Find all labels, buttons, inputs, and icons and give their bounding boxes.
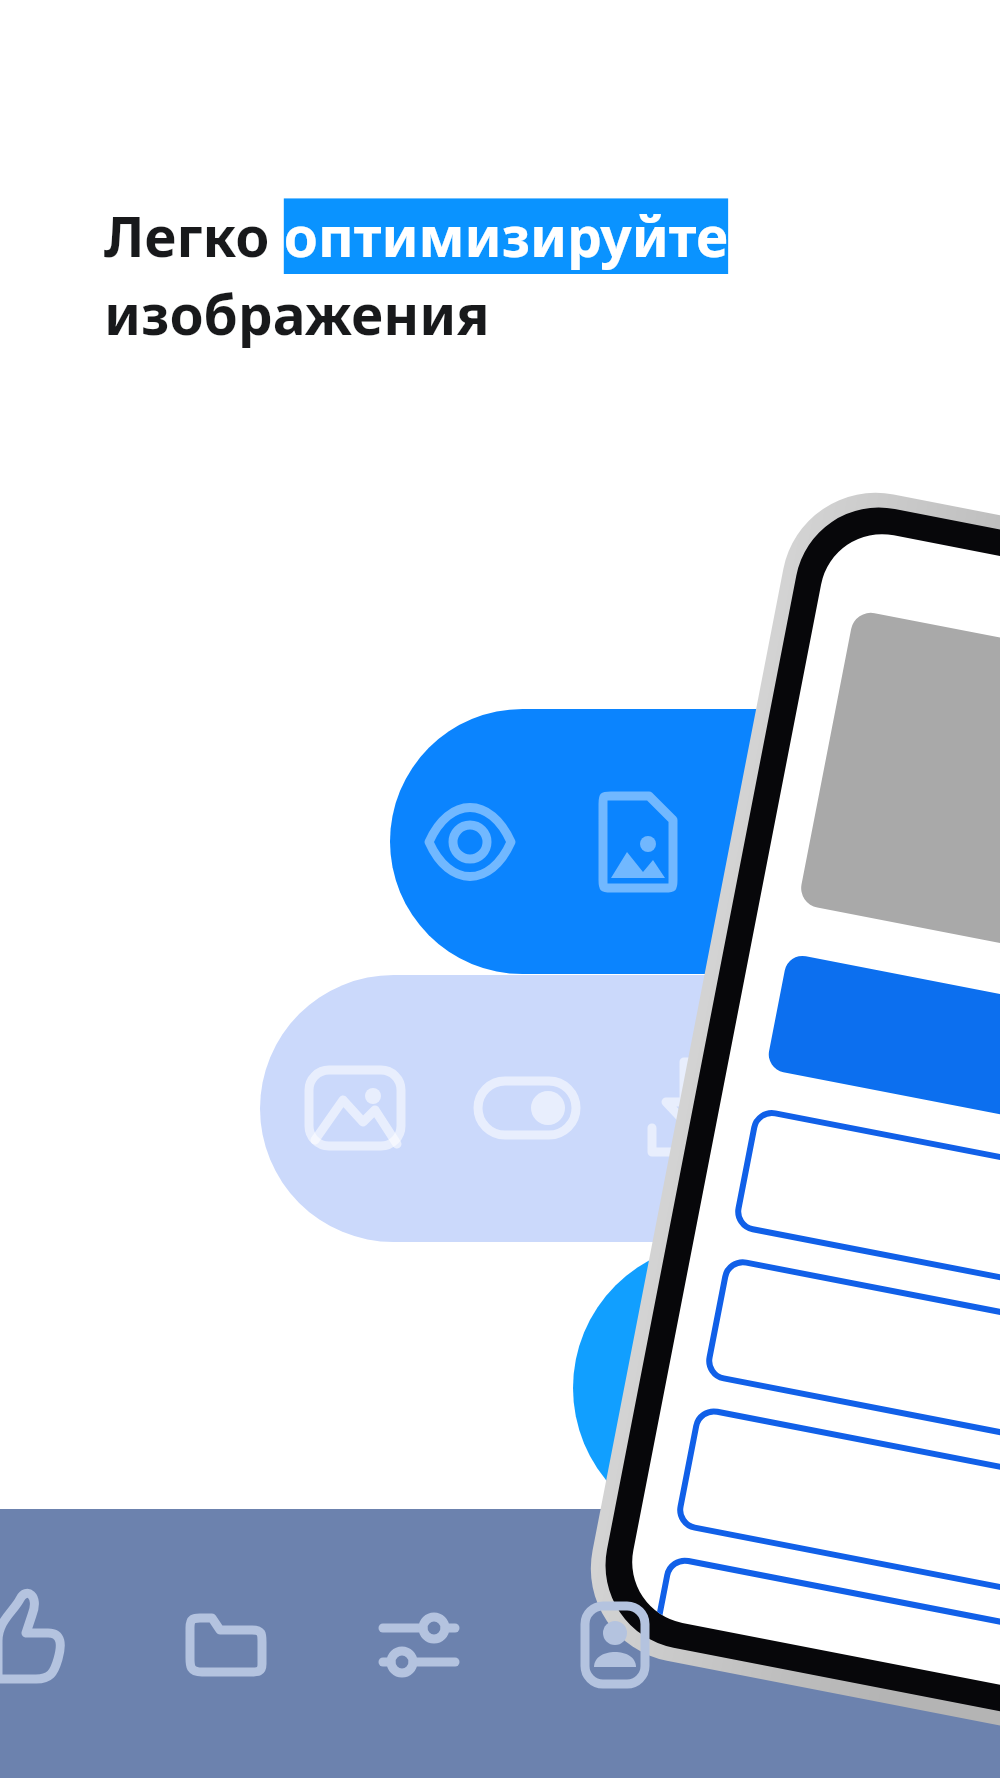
button[interactable]: Profile (549, 1579, 681, 1711)
staticText: Легко оптимизируйте изображения (104, 198, 729, 351)
button[interactable]: Tools (0, 1579, 94, 1711)
button[interactable]: Folders (160, 1579, 292, 1711)
button[interactable]: Adjustments (353, 1579, 485, 1711)
